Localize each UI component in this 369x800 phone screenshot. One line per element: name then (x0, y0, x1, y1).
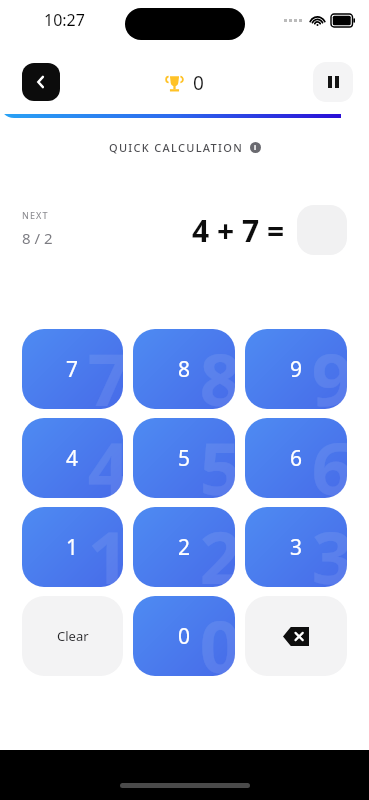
staticText: i (254, 143, 257, 153)
staticText: 8 (199, 329, 235, 409)
button[interactable]: Info (250, 142, 261, 153)
button[interactable]: 0 (133, 596, 235, 676)
staticText: 1 (66, 533, 79, 562)
staticText: 4 + 7 = (192, 210, 285, 251)
button[interactable]: 9 (245, 329, 347, 409)
staticText: 8 / 2 (22, 228, 53, 248)
button[interactable]: Clear (22, 596, 123, 676)
staticText: 3 (311, 507, 347, 587)
staticText: 7 (66, 355, 79, 384)
staticText: 3 (290, 533, 303, 562)
staticText: 0 (193, 70, 204, 96)
button[interactable]: Back (22, 63, 60, 101)
button[interactable]: 6 (245, 418, 347, 498)
staticText: Clear (57, 627, 89, 645)
button[interactable]: 2 (133, 507, 235, 587)
button[interactable]: 3 (245, 507, 347, 587)
button[interactable]: 8 (133, 329, 235, 409)
staticText: NEXT (22, 209, 49, 221)
staticText: 0 (199, 596, 235, 676)
staticText: 6 (290, 444, 303, 473)
staticText: 4 (66, 444, 79, 473)
staticText: 2 (199, 507, 235, 587)
button[interactable]: Pause (313, 62, 353, 102)
staticText: 9 (290, 355, 303, 384)
staticText: 4 (87, 418, 123, 498)
staticText: 1 (87, 507, 123, 587)
staticText: 0 (178, 622, 191, 651)
button[interactable]: 4 (22, 418, 123, 498)
button[interactable]: 7 (22, 329, 123, 409)
staticText: 2 (178, 533, 191, 562)
staticText: 9 (311, 329, 347, 409)
staticText: 10:27 (44, 9, 85, 31)
staticText: 5 (199, 418, 235, 498)
staticText: 5 (178, 444, 191, 473)
staticText: 6 (311, 418, 347, 498)
button[interactable]: Backspace (245, 596, 347, 676)
staticText: 7 (87, 329, 123, 409)
button[interactable]: 1 (22, 507, 123, 587)
staticText: QUICK CALCULATION (109, 140, 244, 155)
button[interactable]: 5 (133, 418, 235, 498)
button[interactable] (297, 205, 347, 255)
staticText: 8 (178, 355, 191, 384)
